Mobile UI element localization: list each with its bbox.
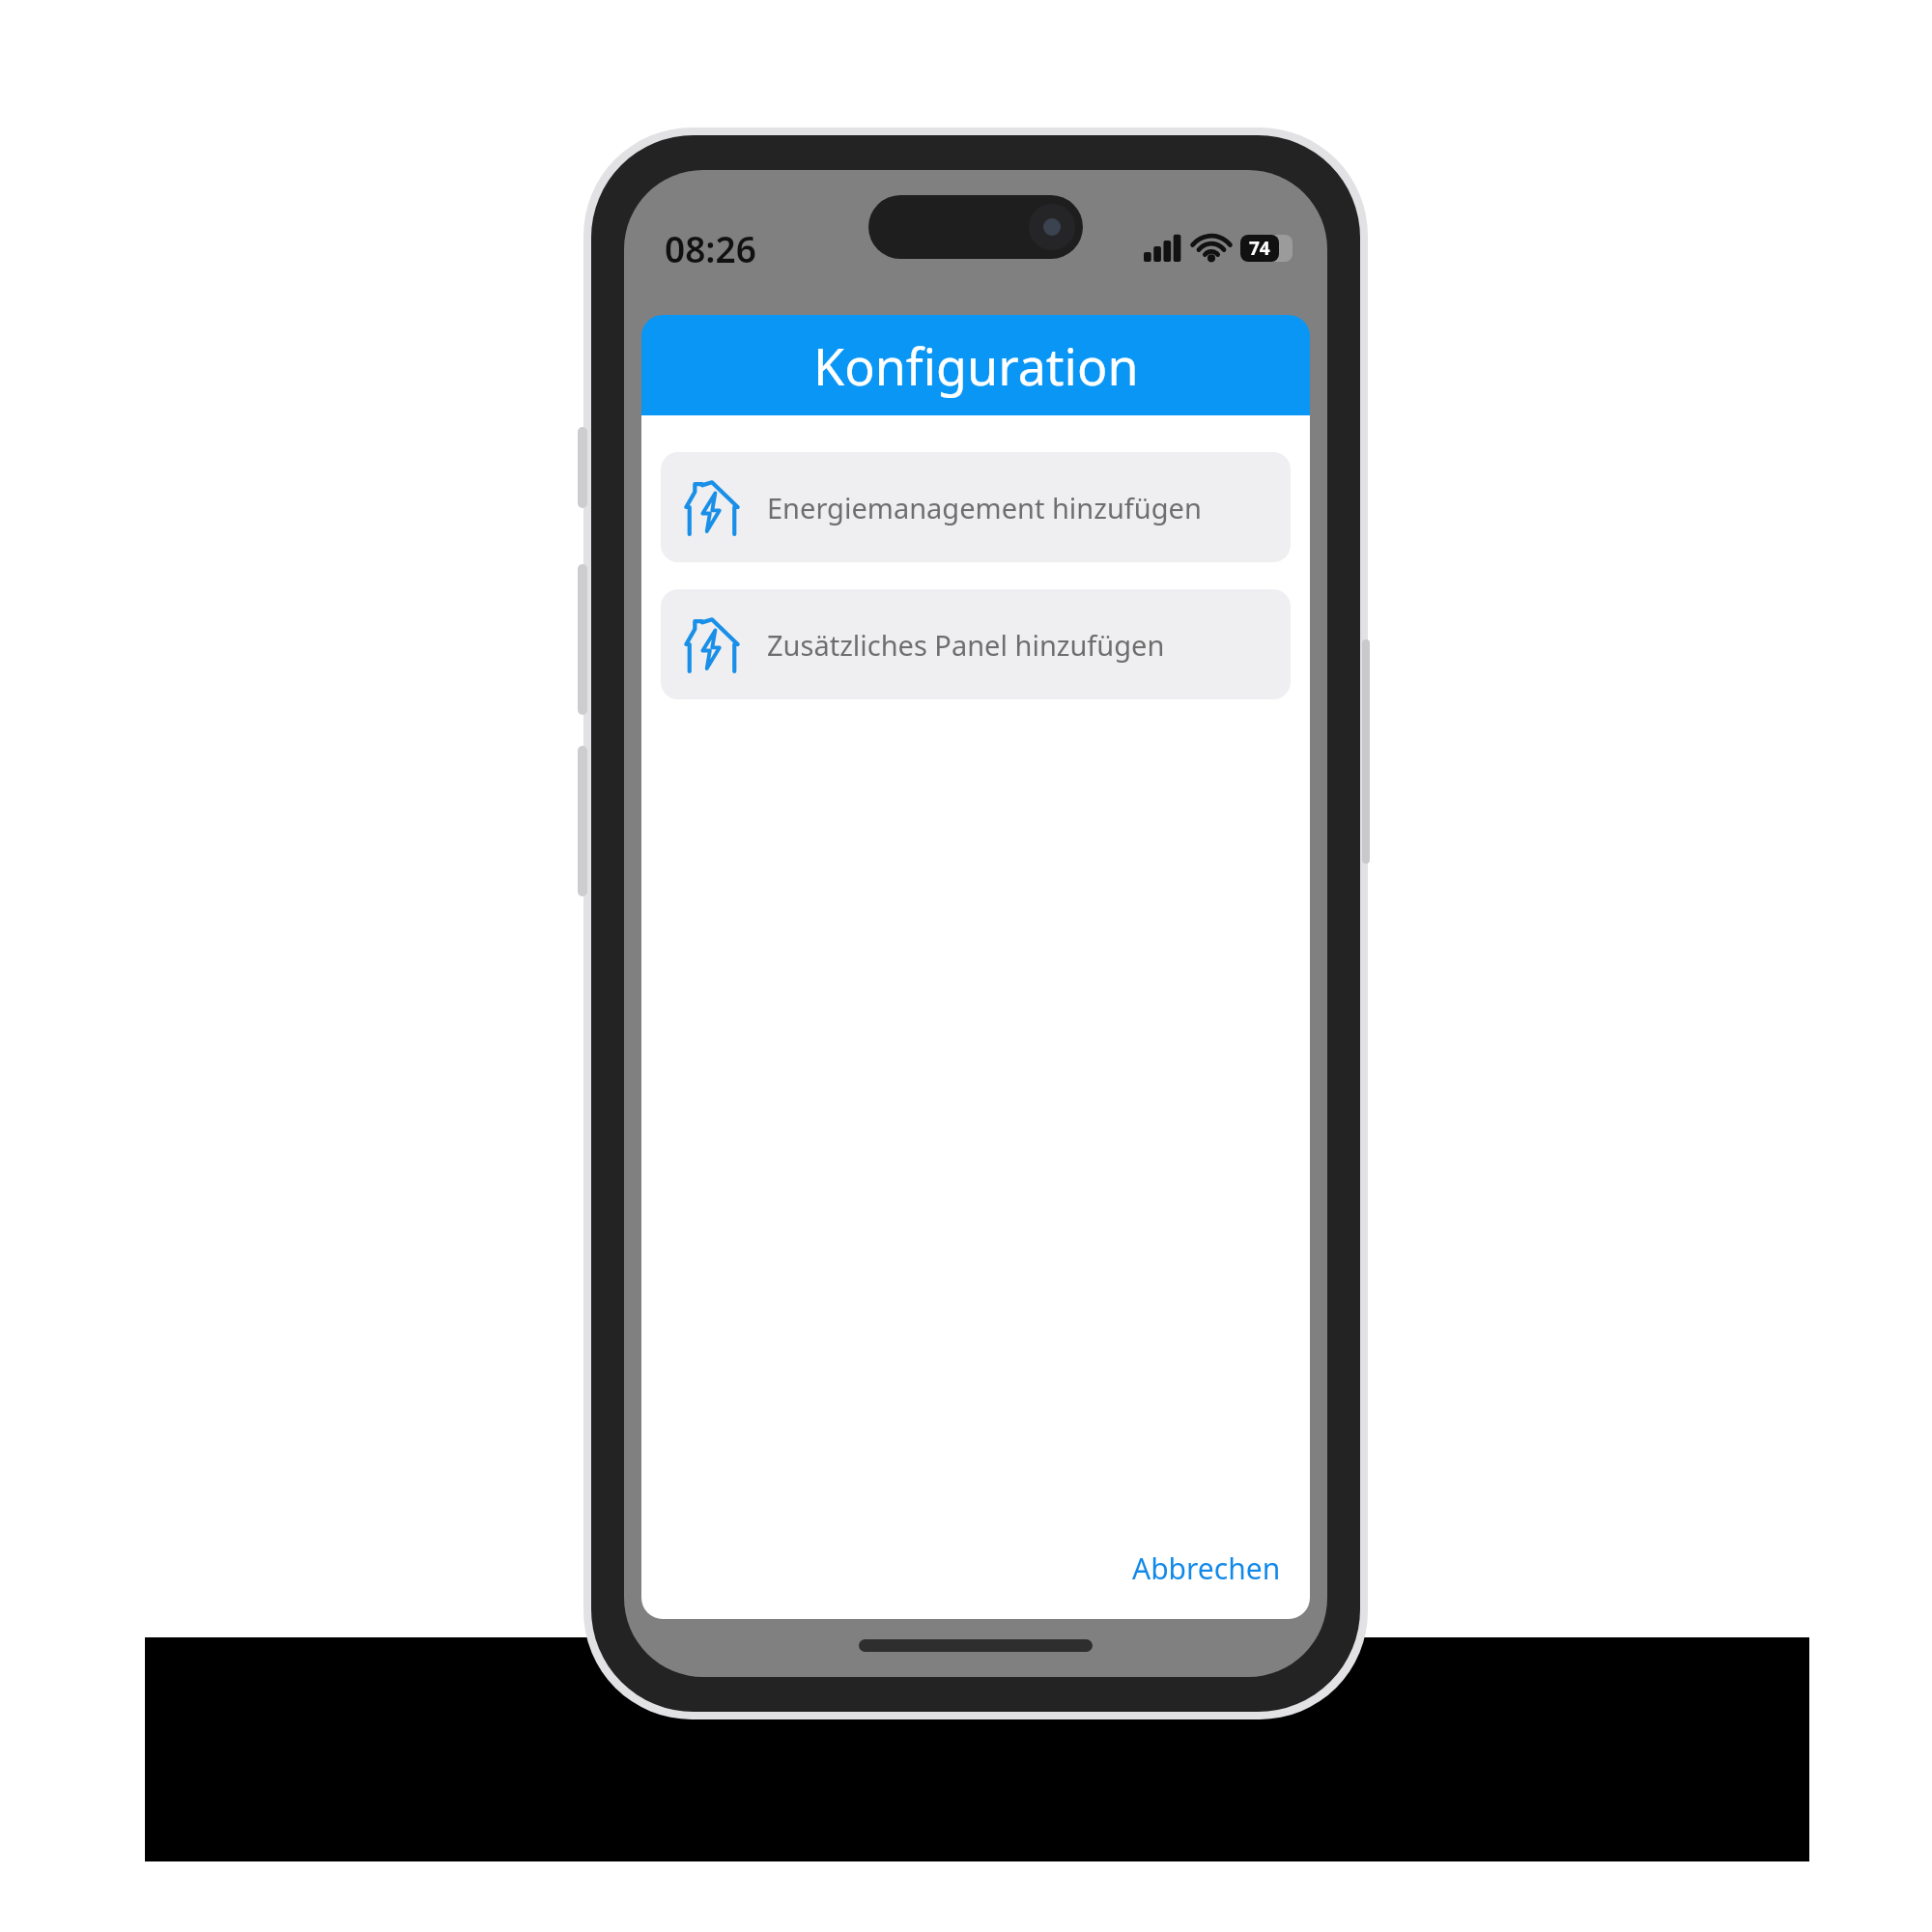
button[interactable]: Abbrechen — [1122, 1541, 1291, 1596]
staticText: Zusätzliches Panel hinzufügen — [767, 626, 1165, 664]
staticText: 08:26 — [665, 224, 756, 272]
staticText: 74 — [1249, 236, 1270, 261]
staticText: Energiemanagement hinzufügen — [767, 489, 1202, 526]
staticText: Konfiguration — [813, 331, 1139, 400]
button[interactable]: Energiemanagement hinzufügen — [661, 452, 1291, 562]
button[interactable]: Zusätzliches Panel hinzufügen — [661, 589, 1291, 699]
staticText: Abbrechen — [1132, 1548, 1281, 1588]
